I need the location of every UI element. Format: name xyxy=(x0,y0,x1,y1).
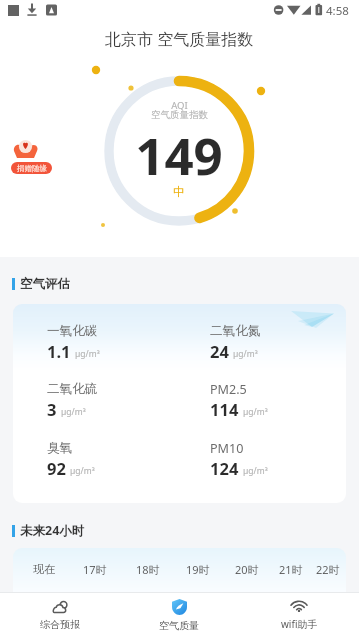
staticText: 114 xyxy=(210,398,239,420)
staticText: 92 xyxy=(47,457,66,479)
staticText: µg/m³ xyxy=(243,465,268,477)
button[interactable]: 20时 xyxy=(228,559,266,579)
staticText: 21时 xyxy=(279,562,303,577)
staticText: 1.1 xyxy=(47,340,71,362)
staticText: PM2.5 xyxy=(210,381,247,398)
staticText: µg/m³ xyxy=(243,406,268,418)
staticText: µg/m³ xyxy=(70,465,95,477)
button[interactable]: 18时 xyxy=(129,559,167,579)
button[interactable]: 现在 xyxy=(25,559,63,579)
staticText: wifi助手 xyxy=(281,617,318,631)
staticText: 空气评估 xyxy=(20,276,70,292)
button[interactable]: 19时 xyxy=(179,559,217,579)
button[interactable]: 22时 xyxy=(309,559,346,579)
staticText: 149 xyxy=(135,120,223,189)
staticText: 二氧化硫 xyxy=(47,381,98,397)
staticText: 臭氧 xyxy=(47,440,73,456)
staticText: 北京市 空气质量指数 xyxy=(105,28,254,50)
button[interactable]: wifi助手 xyxy=(239,593,359,638)
staticText: µg/m³ xyxy=(61,406,86,418)
button[interactable]: 17时 xyxy=(76,559,114,579)
staticText: 22时 xyxy=(316,562,340,577)
button[interactable]: 综合预报 xyxy=(0,593,119,638)
staticText: 124 xyxy=(210,457,239,479)
staticText: 空气质量 xyxy=(159,619,199,632)
staticText: µg/m³ xyxy=(75,348,100,360)
staticText: 中 xyxy=(173,184,185,199)
staticText: 二氧化氮 xyxy=(210,323,261,339)
staticText: PM10 xyxy=(210,440,244,457)
staticText: µg/m³ xyxy=(233,348,258,360)
staticText: 一氧化碳 xyxy=(47,323,98,339)
staticText: 17时 xyxy=(83,562,107,577)
staticText: AQI xyxy=(171,99,188,112)
staticText: 综合预报 xyxy=(40,618,80,631)
staticText: 现在 xyxy=(33,562,55,576)
button[interactable]: 21时 xyxy=(272,559,310,579)
staticText: 4:58 xyxy=(326,3,349,19)
staticText: 24 xyxy=(210,340,229,362)
staticText: 捐赠随缘 xyxy=(17,164,47,173)
button[interactable]: 空气质量 xyxy=(119,593,239,638)
staticText: 3 xyxy=(47,398,57,420)
button[interactable]: 捐赠随缘 xyxy=(10,138,54,178)
staticText: 19时 xyxy=(186,562,210,577)
staticText: 18时 xyxy=(136,562,160,577)
staticText: 空气质量指数 xyxy=(151,109,208,121)
staticText: 未来24小时 xyxy=(20,522,85,539)
staticText: 20时 xyxy=(235,562,259,577)
